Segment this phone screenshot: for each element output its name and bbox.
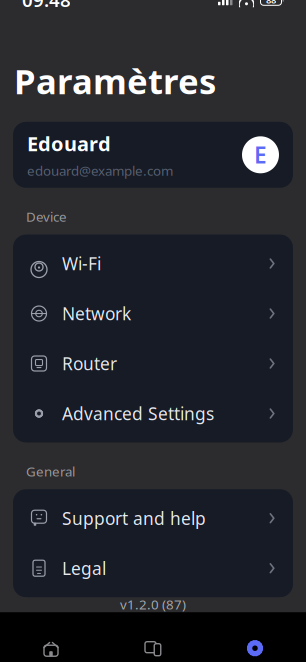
staticText: General bbox=[26, 462, 75, 480]
button[interactable]: Settings bbox=[204, 620, 306, 662]
staticText: Legal bbox=[62, 557, 106, 580]
staticText: Advanced Settings bbox=[62, 402, 214, 425]
staticText: Network bbox=[62, 302, 131, 325]
staticText: Device bbox=[26, 208, 67, 225]
button[interactable]: Wi-Fi bbox=[13, 238, 293, 288]
staticText: v1.2.0 (87) bbox=[120, 595, 186, 613]
staticText: Wi-Fi bbox=[62, 252, 101, 275]
staticText: Paramètres bbox=[14, 58, 216, 104]
button[interactable]: Home bbox=[0, 620, 102, 662]
staticText: Support and help bbox=[62, 507, 206, 530]
staticText: 88 bbox=[266, 0, 276, 6]
staticText: E bbox=[254, 140, 267, 170]
button[interactable]: Support and help bbox=[13, 493, 293, 543]
button[interactable]: Devices bbox=[102, 620, 204, 662]
button[interactable]: Network bbox=[13, 288, 293, 338]
staticText: 09:48 bbox=[22, 0, 71, 12]
staticText: Router bbox=[62, 352, 117, 375]
button[interactable]: Advanced Settings bbox=[13, 388, 293, 438]
staticText: edouard@example.com bbox=[27, 162, 173, 179]
button[interactable]: Legal bbox=[13, 543, 293, 593]
button[interactable]: Router bbox=[13, 338, 293, 388]
staticText: Edouard bbox=[27, 130, 111, 157]
button[interactable]: Edouard bbox=[13, 122, 293, 188]
